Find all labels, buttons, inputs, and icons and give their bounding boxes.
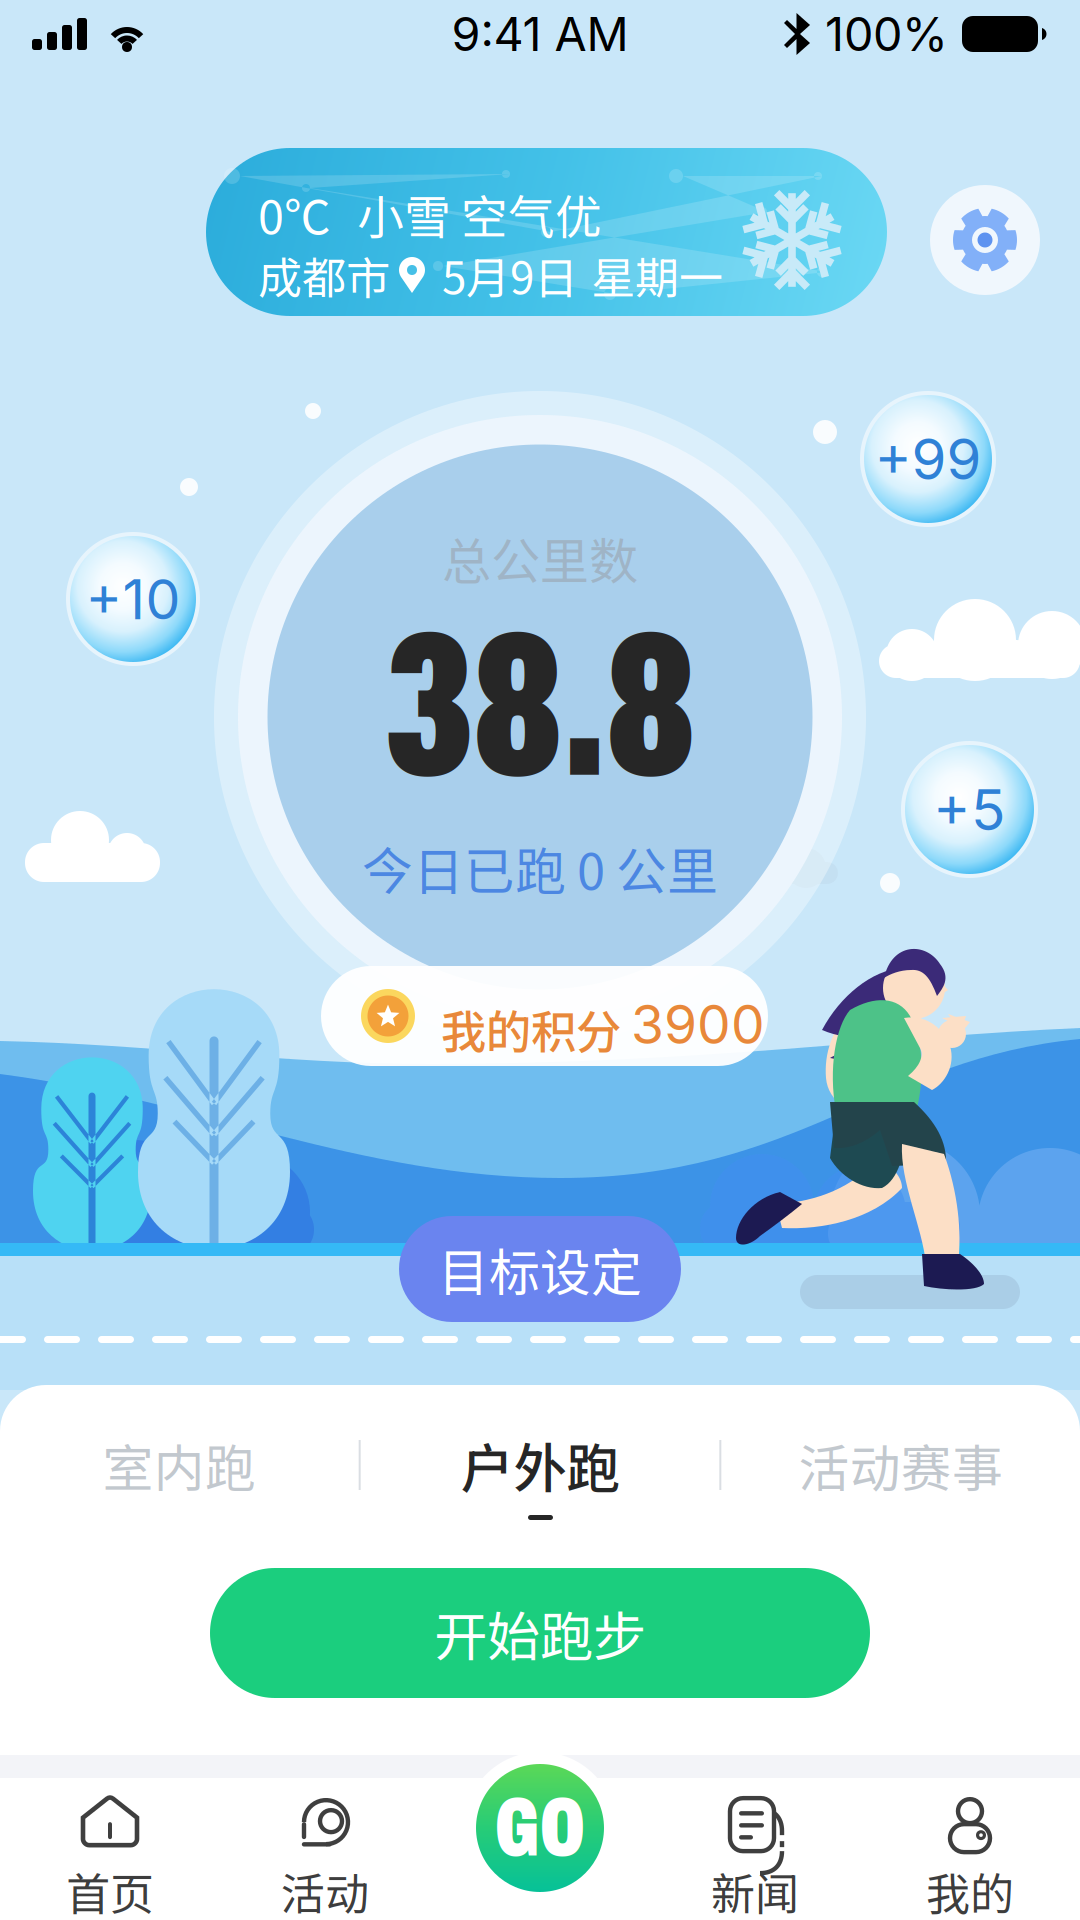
staticText: +5 <box>933 775 1006 844</box>
staticText: 小雪 空气优 <box>357 180 602 248</box>
staticText: 目标设定 <box>438 1232 642 1306</box>
staticText: 3900 <box>631 992 765 1056</box>
staticText: 总公里数 <box>442 522 638 594</box>
staticText: 活动 <box>281 1859 369 1920</box>
staticText: 首页 <box>66 1859 154 1920</box>
button[interactable]: 我的 <box>890 1803 1050 1915</box>
button[interactable]: 目标设定 <box>399 1216 681 1322</box>
staticText: 我的 <box>926 1859 1014 1920</box>
staticText: GO <box>494 1783 585 1873</box>
button[interactable]: 首页 <box>30 1803 190 1915</box>
button[interactable]: 户外跑 <box>361 1426 719 1504</box>
button[interactable]: 0℃ <box>206 148 887 316</box>
staticText: 我的积分 <box>441 996 621 1062</box>
staticText: +99 <box>874 425 981 493</box>
staticText: 活动赛事 <box>799 1428 1003 1502</box>
button[interactable]: 新闻 <box>675 1803 835 1915</box>
button[interactable]: 活动 <box>245 1803 405 1915</box>
staticText: 室内跑 <box>103 1428 256 1502</box>
staticText: 星期一 <box>591 243 723 307</box>
button[interactable]: 开始跑步 <box>210 1568 870 1698</box>
staticText: 开始跑步 <box>434 1594 646 1672</box>
staticText: 0℃ <box>258 180 331 248</box>
button[interactable]: Settings <box>930 185 1040 295</box>
staticText: 100% <box>825 6 948 62</box>
staticText: 5月9日 <box>442 243 578 307</box>
staticText: 9:41 AM <box>451 6 628 62</box>
staticText: 38.8 <box>385 597 695 817</box>
staticText: 今日已跑 0 公里 <box>362 831 718 905</box>
staticText: 成都市 <box>258 243 390 307</box>
button[interactable]: 室内跑 <box>0 1428 359 1502</box>
button[interactable]: Start run <box>464 1752 616 1904</box>
staticText: +10 <box>85 565 180 633</box>
staticText: 新闻 <box>711 1859 799 1920</box>
staticText: 户外跑 <box>460 1426 619 1504</box>
button[interactable]: 活动赛事 <box>721 1428 1080 1502</box>
button[interactable]: 我的积分 <box>321 966 768 1066</box>
